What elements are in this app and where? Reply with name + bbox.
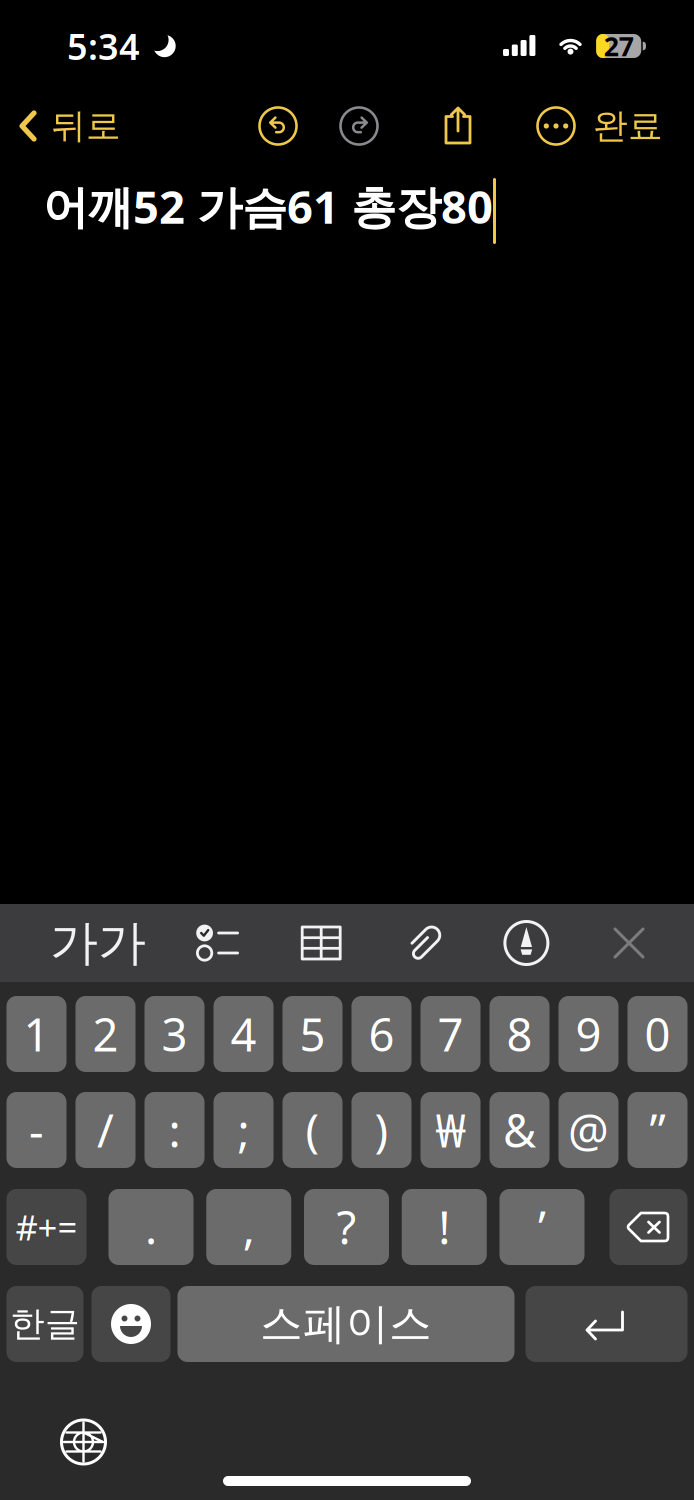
staticText: #+= — [15, 1204, 77, 1250]
button[interactable]: 다시 실행 — [331, 98, 387, 154]
staticText: 뒤로 — [51, 105, 121, 147]
button[interactable]: 6 — [351, 996, 411, 1072]
staticText: 3 — [161, 1004, 187, 1064]
button[interactable]: 표 — [284, 904, 358, 982]
staticText: ’ — [538, 1197, 546, 1257]
staticText: - — [29, 1100, 44, 1160]
button[interactable]: ( — [282, 1092, 342, 1168]
button[interactable]: 1 — [6, 996, 66, 1072]
button[interactable]: 키보드 닫기 — [592, 904, 666, 982]
button[interactable]: . — [108, 1189, 193, 1265]
button[interactable]: 한글 — [6, 1286, 83, 1362]
staticText: 스페이스 — [260, 1298, 432, 1350]
button[interactable]: ) — [351, 1092, 411, 1168]
staticText: ; — [237, 1100, 249, 1160]
button[interactable]: ’ — [499, 1189, 584, 1265]
button[interactable]: 마크업 — [489, 904, 563, 982]
staticText: / — [97, 1100, 114, 1160]
staticText: @ — [568, 1100, 609, 1160]
button[interactable]: 4 — [213, 996, 273, 1072]
staticText: , — [243, 1197, 255, 1257]
staticText: ” — [649, 1100, 665, 1160]
button[interactable]: 가가 — [43, 904, 153, 982]
button[interactable]: 완료 — [593, 95, 694, 157]
button[interactable]: 공유 — [430, 98, 486, 154]
staticText: 2 — [92, 1004, 118, 1064]
button[interactable]: , — [206, 1189, 291, 1265]
staticText: 완료 — [593, 105, 663, 147]
button[interactable]: ” — [627, 1092, 687, 1168]
button[interactable]: 다음 키보드 — [49, 1408, 117, 1476]
button[interactable]: 7 — [420, 996, 480, 1072]
button[interactable]: / — [75, 1092, 135, 1168]
staticText: 8 — [506, 1004, 532, 1064]
button[interactable]: 3 — [144, 996, 204, 1072]
button[interactable]: : — [144, 1092, 204, 1168]
button[interactable]: @ — [558, 1092, 618, 1168]
button[interactable]: 8 — [489, 996, 549, 1072]
staticText: 0 — [644, 1004, 670, 1064]
button[interactable]: - — [6, 1092, 66, 1168]
button[interactable]: 9 — [558, 996, 618, 1072]
staticText: 가가 — [50, 913, 146, 972]
staticText: 9 — [575, 1004, 601, 1064]
staticText: 4 — [230, 1004, 256, 1064]
button[interactable]: 0 — [627, 996, 687, 1072]
button[interactable]: ! — [402, 1189, 487, 1265]
button[interactable]: ₩ — [420, 1092, 480, 1168]
staticText: ) — [374, 1100, 388, 1160]
button[interactable]: 줄바꿈 — [525, 1286, 687, 1362]
staticText: 1 — [23, 1004, 49, 1064]
staticText: & — [503, 1100, 536, 1160]
staticText: 5 — [299, 1004, 325, 1064]
button[interactable]: ; — [213, 1092, 273, 1168]
button[interactable]: 첨부 — [387, 904, 461, 982]
staticText: 27 — [604, 28, 634, 64]
staticText: : — [168, 1100, 180, 1160]
staticText: . — [145, 1197, 157, 1257]
staticText: ? — [336, 1197, 356, 1257]
button[interactable]: 더 보기 — [528, 98, 584, 154]
button[interactable]: 체크리스트 — [182, 904, 256, 982]
button[interactable]: ? — [304, 1189, 389, 1265]
staticText: 한글 — [10, 1303, 80, 1345]
button[interactable]: 5 — [282, 996, 342, 1072]
button[interactable]: 지우기 — [609, 1189, 687, 1265]
button[interactable]: 뒤로 — [0, 95, 121, 157]
button[interactable]: 실행 취소 — [250, 98, 306, 154]
staticText: ( — [305, 1100, 319, 1160]
button[interactable]: 2 — [75, 996, 135, 1072]
button[interactable]: 이모티콘 — [91, 1286, 170, 1362]
staticText: ₩ — [435, 1100, 465, 1160]
staticText: 7 — [437, 1004, 463, 1064]
button[interactable]: 스페이스 — [177, 1286, 514, 1362]
button[interactable]: & — [489, 1092, 549, 1168]
staticText: ! — [438, 1197, 450, 1257]
staticText: 어깨52 가슴61 총장80 — [43, 176, 493, 236]
staticText: 6 — [368, 1004, 394, 1064]
button[interactable]: #+= — [6, 1189, 86, 1265]
staticText: 5:34 — [67, 22, 140, 70]
